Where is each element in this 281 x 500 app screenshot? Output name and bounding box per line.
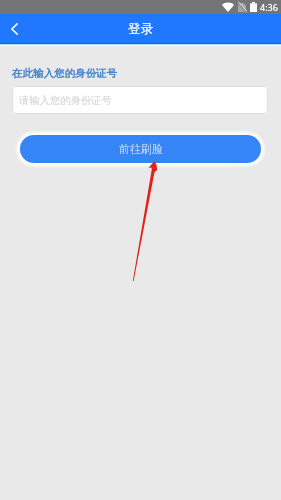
button[interactable]: 前往刷脸: [20, 135, 261, 163]
button[interactable]: 身份证号输入框: [12, 86, 268, 114]
staticText: 前往刷脸: [119, 142, 163, 156]
staticText: 在此输入您的身份证号: [12, 67, 117, 80]
staticText: 请输入您的身份证号: [19, 94, 112, 107]
staticText: 4:36: [260, 1, 278, 13]
button[interactable]: Back: [0, 14, 28, 43]
staticText: 登录: [128, 21, 153, 37]
